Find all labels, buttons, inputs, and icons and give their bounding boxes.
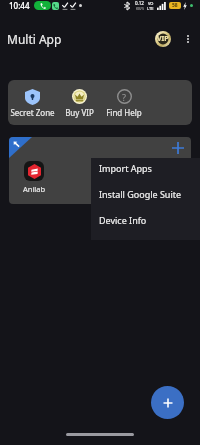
staticText: 58 (172, 2, 178, 9)
button[interactable]: Install Google Suite (91, 184, 200, 210)
staticText: Anilab (23, 184, 46, 194)
staticText: VO (148, 1, 154, 6)
staticText: Find Help (106, 107, 142, 118)
button[interactable]: Secret Zone (8, 80, 56, 125)
button[interactable]: More options (179, 30, 197, 48)
button[interactable]: Add app (151, 386, 184, 419)
staticText: Buy VIP (65, 107, 94, 118)
staticText: LTE (147, 6, 154, 11)
staticText: Import Apps (99, 162, 152, 174)
staticText: Multi App (7, 31, 62, 47)
staticText: Secret Zone (10, 107, 55, 118)
button[interactable]: Import Apps (91, 158, 200, 184)
button[interactable]: Add (169, 139, 187, 157)
button[interactable]: Anilab (13, 161, 55, 194)
staticText: Install Google Suite (99, 188, 182, 200)
staticText: Device Info (99, 214, 147, 226)
staticText: ? (122, 91, 127, 103)
button[interactable]: VIP (153, 29, 172, 48)
staticText: 10:44 (9, 0, 30, 11)
button[interactable]: ? (102, 80, 146, 125)
staticText: VIP (157, 34, 169, 44)
button[interactable]: Device Info (91, 210, 200, 236)
staticText: 0.12 (135, 0, 144, 6)
staticText: KB/S (136, 6, 144, 11)
button[interactable]: Buy VIP (56, 80, 102, 125)
